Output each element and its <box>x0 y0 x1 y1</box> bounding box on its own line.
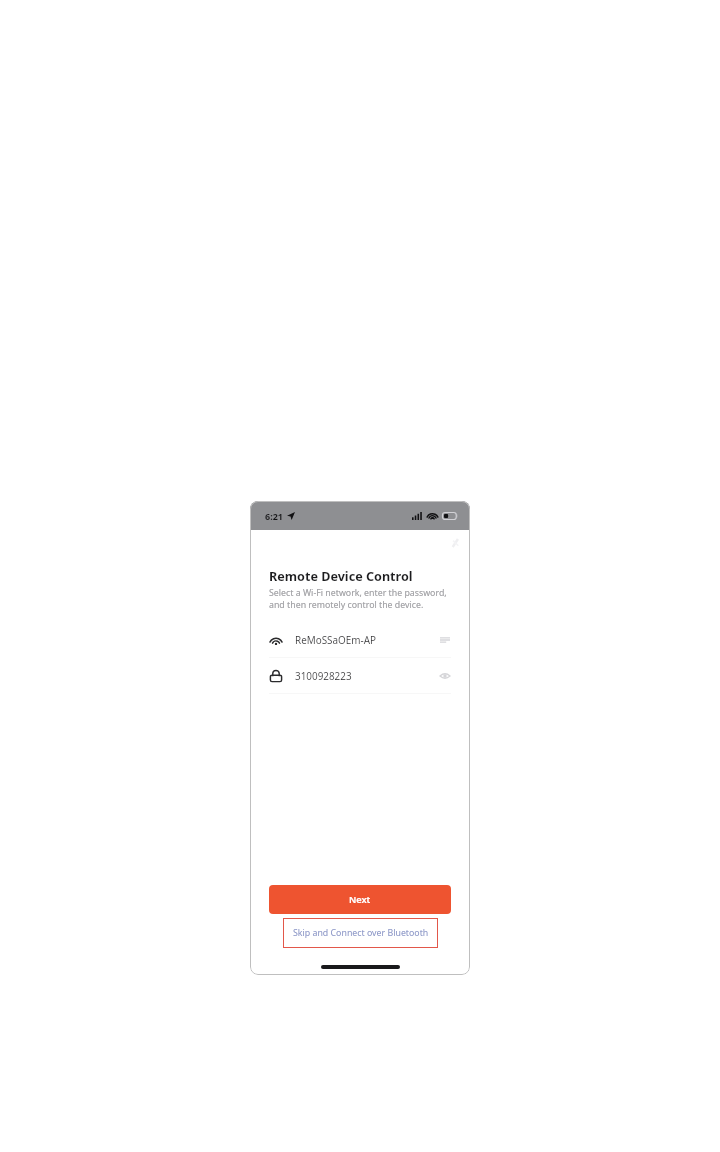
staticText: Select a Wi-Fi network, enter the passwo… <box>269 587 451 611</box>
button[interactable]: Skip and Connect over Bluetooth <box>283 918 438 948</box>
button[interactable]: Next <box>269 885 451 914</box>
staticText: 3100928223 <box>295 669 352 682</box>
staticText: Skip and Connect over Bluetooth <box>293 927 429 939</box>
staticText: Remote Device Control <box>269 568 413 585</box>
button[interactable]: 3100928223 <box>269 658 451 693</box>
button[interactable]: Show password <box>439 670 451 682</box>
staticText: ReMoSSaOEm-AP <box>295 633 377 646</box>
staticText: Next <box>349 893 371 906</box>
staticText: 6:21 <box>265 510 283 522</box>
button[interactable]: ReMoSSaOEm-AP <box>269 622 451 657</box>
button[interactable]: Choose network <box>439 634 451 646</box>
